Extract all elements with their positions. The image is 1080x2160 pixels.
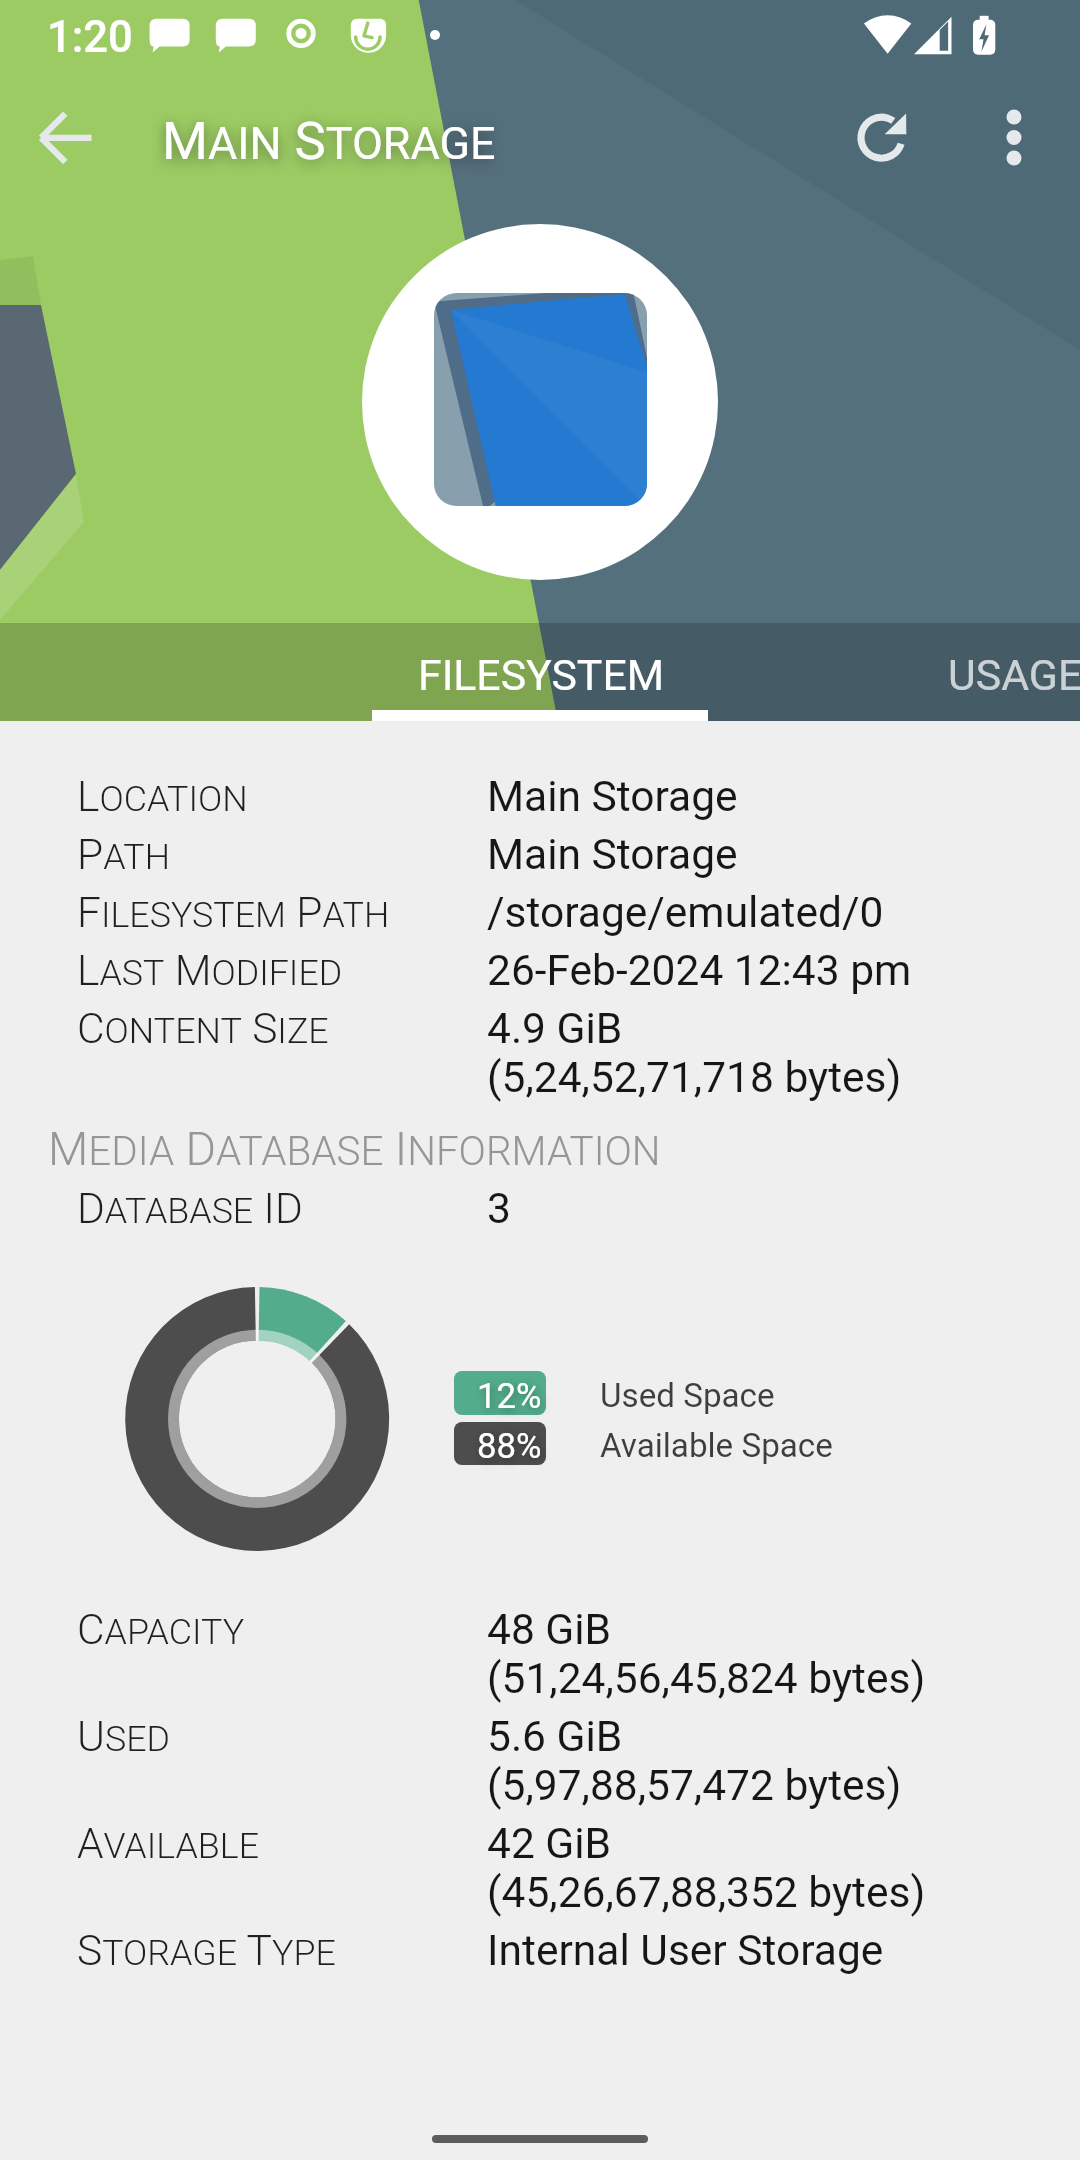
button[interactable]: CAPACITY	[42, 1587, 942, 1720]
button[interactable]: USED	[42, 1694, 942, 1827]
staticText: 1:20	[47, 12, 133, 63]
button[interactable]: CONTENT SIZE	[42, 986, 942, 1119]
staticText: CAPACITY	[77, 1605, 245, 1655]
staticText: DATABASE ID	[77, 1184, 303, 1234]
staticText: 3	[487, 1184, 511, 1234]
staticText: Main Storage	[487, 772, 738, 822]
staticText: CONTENT SIZE	[77, 1004, 329, 1054]
button[interactable]	[454, 1371, 546, 1415]
staticText: FILESYSTEM	[418, 650, 665, 700]
staticText: USED	[77, 1712, 170, 1762]
staticText: LAST MODIFIED	[77, 946, 343, 996]
staticText: /storage/emulated/0	[487, 888, 884, 938]
staticText: Main Storage	[487, 830, 738, 880]
button[interactable]: More options	[966, 90, 1062, 186]
staticText: 12%	[477, 1376, 542, 1417]
staticText: PATH	[77, 830, 170, 880]
staticText: (5,24,52,71,718 bytes)	[487, 1053, 902, 1103]
button[interactable]: DATABASE ID	[42, 1166, 942, 1250]
button[interactable]	[454, 1422, 546, 1465]
staticText: (45,26,67,88,352 bytes)	[487, 1868, 926, 1918]
staticText: Internal User Storage	[487, 1926, 884, 1976]
staticText: (5,97,88,57,472 bytes)	[487, 1761, 902, 1811]
staticText: Available Space	[600, 1426, 833, 1465]
staticText: 88%	[477, 1426, 542, 1467]
button[interactable]: FILESYSTEM PATH	[42, 870, 942, 954]
staticText: MAIN STORAGE	[162, 110, 496, 172]
staticText: (51,24,56,45,824 bytes)	[487, 1654, 926, 1704]
staticText: FILESYSTEM PATH	[77, 888, 390, 938]
button[interactable]: LAST MODIFIED	[42, 928, 942, 1012]
staticText: USAGE	[948, 650, 1080, 700]
staticText: 42 GiB	[487, 1819, 612, 1869]
button[interactable]: Navigate up	[18, 90, 114, 186]
button[interactable]: FILESYSTEM	[372, 623, 708, 721]
staticText: LOCATION	[77, 772, 248, 822]
staticText: AVAILABLE	[77, 1819, 260, 1869]
button[interactable]: LOCATION	[42, 754, 942, 838]
staticText: STORAGE TYPE	[77, 1926, 336, 1976]
staticText: 4.9 GiB	[487, 1004, 623, 1054]
staticText: 48 GiB	[487, 1605, 612, 1655]
button[interactable]: USAGE	[880, 623, 1080, 721]
staticText: 5.6 GiB	[487, 1712, 623, 1762]
staticText: Used Space	[600, 1376, 775, 1415]
button[interactable]: Refresh	[833, 90, 929, 186]
staticText: 26-Feb-2024 12:43 pm	[487, 946, 912, 996]
staticText: MEDIA DATABASE INFORMATION	[48, 1122, 661, 1177]
button[interactable]: PATH	[42, 812, 942, 896]
button[interactable]: STORAGE TYPE	[42, 1907, 942, 1991]
button[interactable]: AVAILABLE	[42, 1800, 942, 1933]
